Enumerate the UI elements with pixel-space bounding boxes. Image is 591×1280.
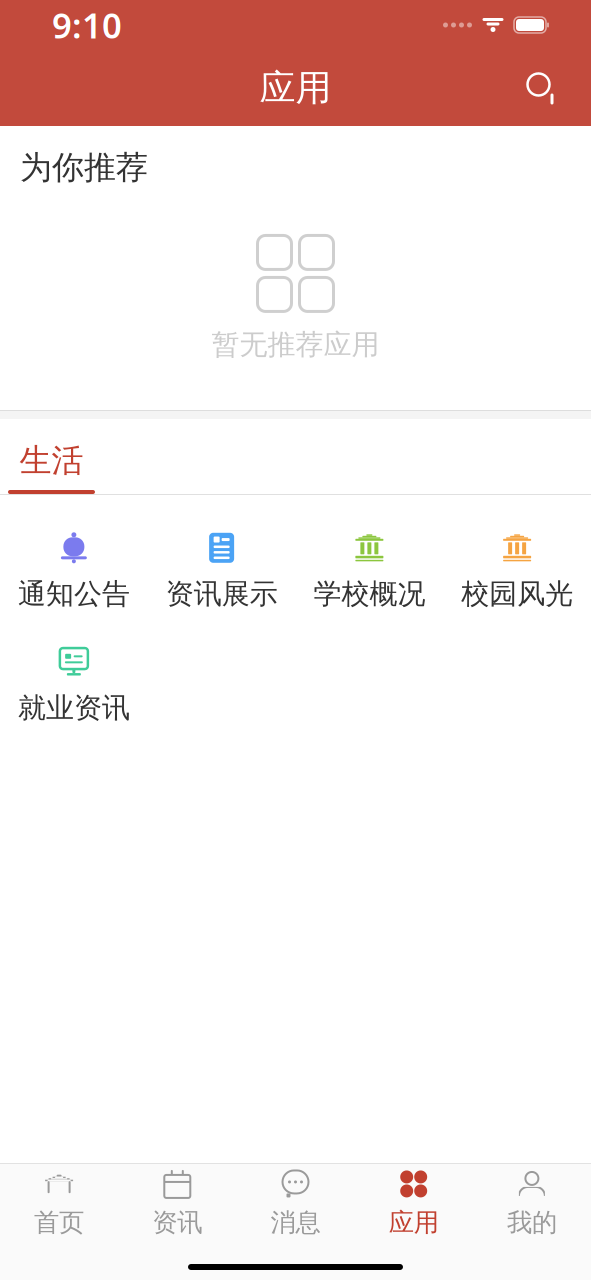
- button[interactable]: 生活: [8, 419, 95, 494]
- staticText: 学校概况: [313, 577, 425, 611]
- button[interactable]: 搜索: [513, 59, 571, 117]
- staticText: 首页: [34, 1207, 84, 1238]
- button[interactable]: 消息: [236, 1164, 355, 1242]
- button[interactable]: 首页: [0, 1164, 118, 1242]
- staticText: 暂无推荐应用: [211, 327, 379, 362]
- staticText: 9:10: [52, 2, 122, 48]
- button[interactable]: 资讯: [118, 1164, 236, 1242]
- staticText: 我的: [507, 1207, 557, 1238]
- staticText: 生活: [19, 441, 83, 480]
- staticText: 为你推荐: [20, 148, 148, 187]
- staticText: 资讯展示: [166, 577, 278, 611]
- button[interactable]: 应用: [355, 1164, 473, 1242]
- button[interactable]: 学校概况: [295, 523, 443, 619]
- staticText: 应用: [389, 1207, 439, 1238]
- button[interactable]: 通知公告: [0, 523, 148, 619]
- staticText: 校园风光: [461, 577, 573, 611]
- staticText: 通知公告: [18, 577, 130, 611]
- button[interactable]: 我的: [473, 1164, 591, 1242]
- button[interactable]: 资讯展示: [148, 523, 296, 619]
- staticText: 资讯: [152, 1207, 202, 1238]
- button[interactable]: 校园风光: [443, 523, 591, 619]
- staticText: 应用: [259, 66, 331, 110]
- staticText: 消息: [270, 1207, 320, 1238]
- staticText: 就业资讯: [18, 691, 130, 725]
- button[interactable]: 就业资讯: [0, 637, 148, 733]
